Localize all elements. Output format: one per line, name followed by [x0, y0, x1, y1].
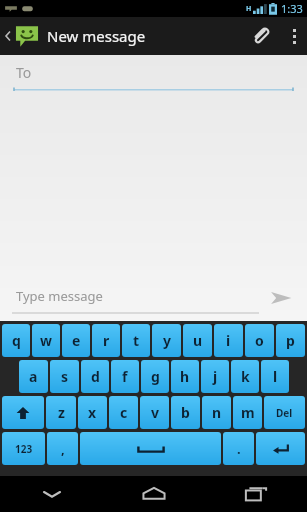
staticText: e	[72, 331, 81, 350]
staticText: New message	[47, 26, 146, 46]
staticText: u	[193, 331, 203, 350]
button[interactable]: To	[0, 55, 307, 93]
staticText: y	[163, 331, 171, 350]
staticText: q	[12, 331, 21, 350]
button[interactable]: Send	[261, 281, 301, 315]
button[interactable]: k	[231, 360, 259, 393]
staticText: w	[40, 331, 52, 350]
staticText: g	[151, 367, 160, 386]
staticText: t	[133, 331, 140, 350]
button[interactable]: r	[92, 324, 120, 357]
button[interactable]: Hide keyboard	[0, 476, 103, 512]
staticText: c	[120, 403, 128, 422]
staticText: s	[61, 367, 69, 386]
button[interactable]: Delete	[264, 396, 305, 429]
button[interactable]: t	[122, 324, 150, 357]
button[interactable]: l	[261, 360, 289, 393]
staticText: b	[181, 403, 190, 422]
button[interactable]: w	[32, 324, 60, 357]
button[interactable]: p	[276, 324, 305, 357]
button[interactable]: Numbers	[2, 432, 45, 465]
button[interactable]: v	[140, 396, 169, 429]
button[interactable]: a	[19, 360, 48, 393]
button[interactable]: m	[233, 396, 262, 429]
button[interactable]: i	[214, 324, 243, 357]
staticText: Del	[276, 406, 293, 420]
button[interactable]: Back	[0, 17, 41, 55]
staticText: i	[226, 331, 231, 350]
staticText: 1:33	[281, 1, 303, 16]
staticText: m	[241, 403, 255, 422]
button[interactable]: n	[202, 396, 231, 429]
staticText: x	[88, 403, 97, 422]
staticText: o	[255, 331, 264, 350]
staticText: d	[91, 367, 100, 386]
staticText: 123	[15, 442, 33, 456]
staticText: a	[29, 367, 38, 386]
staticText: To	[16, 63, 32, 82]
staticText: .	[237, 440, 241, 458]
staticText: ,	[61, 440, 65, 458]
staticText: f	[122, 367, 128, 386]
staticText: k	[241, 367, 250, 386]
staticText: Type message	[16, 287, 103, 305]
staticText: z	[58, 403, 65, 422]
staticText: p	[286, 331, 295, 350]
button[interactable]: f	[111, 360, 139, 393]
button[interactable]: More options	[281, 17, 307, 55]
button[interactable]: Space	[80, 432, 221, 465]
button[interactable]: Home	[103, 476, 205, 512]
button[interactable]: u	[183, 324, 212, 357]
staticText: r	[103, 331, 110, 350]
staticText: j	[213, 367, 218, 386]
staticText: l	[273, 367, 278, 386]
button[interactable]: Enter	[256, 432, 305, 465]
staticText: n	[212, 403, 222, 422]
button[interactable]: o	[245, 324, 274, 357]
button[interactable]: Shift	[2, 396, 44, 429]
button[interactable]: x	[78, 396, 107, 429]
button[interactable]: e	[62, 324, 90, 357]
button[interactable]: q	[2, 324, 30, 357]
button[interactable]: .	[223, 432, 254, 465]
staticText: v	[151, 403, 159, 422]
staticText: h	[180, 367, 190, 386]
staticText: H	[246, 4, 252, 14]
button[interactable]: y	[152, 324, 181, 357]
button[interactable]: Recent apps	[205, 476, 307, 512]
button[interactable]: z	[46, 396, 76, 429]
button[interactable]: j	[201, 360, 229, 393]
button[interactable]: Type message	[10, 281, 261, 315]
button[interactable]: b	[171, 396, 200, 429]
button[interactable]: g	[141, 360, 169, 393]
button[interactable]: h	[171, 360, 199, 393]
button[interactable]: c	[109, 396, 138, 429]
button[interactable]: Attach	[241, 17, 281, 55]
button[interactable]: ,	[47, 432, 78, 465]
button[interactable]: s	[50, 360, 79, 393]
button[interactable]: d	[81, 360, 109, 393]
